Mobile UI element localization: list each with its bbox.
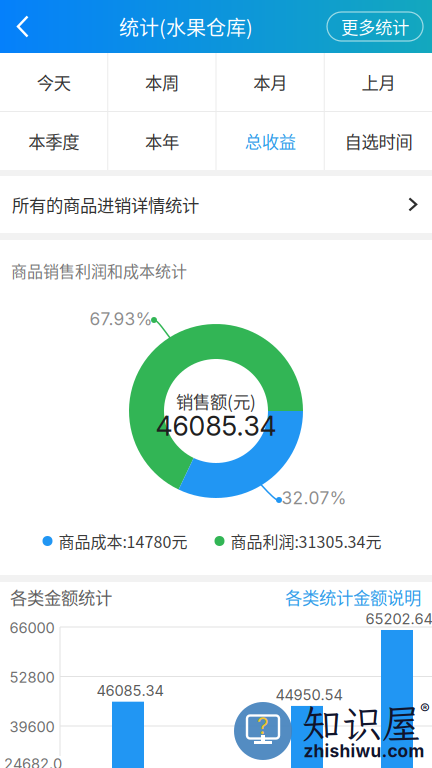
button[interactable]: 各类统计金额说明 [285, 584, 421, 610]
button[interactable]: 本年 [108, 112, 215, 170]
button[interactable]: 上月 [325, 53, 432, 111]
staticText: 总收益 [245, 128, 296, 154]
staticText: 本月 [253, 69, 287, 95]
staticText: 所有的商品进销详情统计 [12, 192, 199, 217]
button[interactable]: 本月 [216, 53, 324, 111]
staticText: 上月 [361, 69, 395, 95]
staticText: 商品成本:14780元 [58, 529, 187, 553]
button[interactable]: 返回 [0, 0, 45, 53]
staticText: 52800 [9, 669, 54, 686]
staticText: 今天 [37, 69, 71, 95]
staticText: 67.93% [89, 308, 152, 329]
staticText: 66000 [9, 619, 54, 637]
staticText: 商品销售利润和成本统计 [11, 259, 187, 282]
button[interactable]: 总收益 [216, 112, 324, 170]
staticText: 46085.34 [96, 682, 163, 699]
staticText: 本季度 [28, 128, 79, 154]
staticText: 32.07% [281, 487, 346, 508]
staticText: 各类统计金额说明 [285, 584, 421, 610]
button[interactable]: 本周 [108, 53, 215, 111]
staticText: 统计(水果仓库) [119, 12, 253, 41]
staticText: 65202.64 [365, 610, 432, 628]
button[interactable]: 更多统计 [327, 12, 423, 41]
staticText: 本年 [145, 128, 179, 154]
staticText: 39600 [9, 718, 54, 736]
staticText: 46085.34 [155, 410, 276, 442]
button[interactable]: 自选时间 [325, 112, 432, 170]
staticText: 本周 [145, 69, 179, 95]
staticText: 各类金额统计 [10, 584, 112, 610]
staticText: 销售额(元) [176, 388, 256, 414]
staticText: 商品利润:31305.34元 [230, 529, 381, 553]
staticText: ? [257, 712, 269, 740]
staticText: zhishiwu.com [303, 740, 424, 761]
staticText: 24682.0 [4, 755, 62, 768]
button[interactable]: 本季度 [0, 112, 107, 170]
staticText: 更多统计 [341, 14, 409, 39]
staticText: 44950.54 [275, 686, 342, 704]
button[interactable]: 今天 [0, 53, 107, 111]
staticText: ® [420, 700, 430, 718]
staticText: 知识屋 [302, 697, 422, 749]
staticText: 自选时间 [344, 128, 412, 154]
button[interactable]: 所有的商品进销详情统计 [0, 176, 432, 233]
